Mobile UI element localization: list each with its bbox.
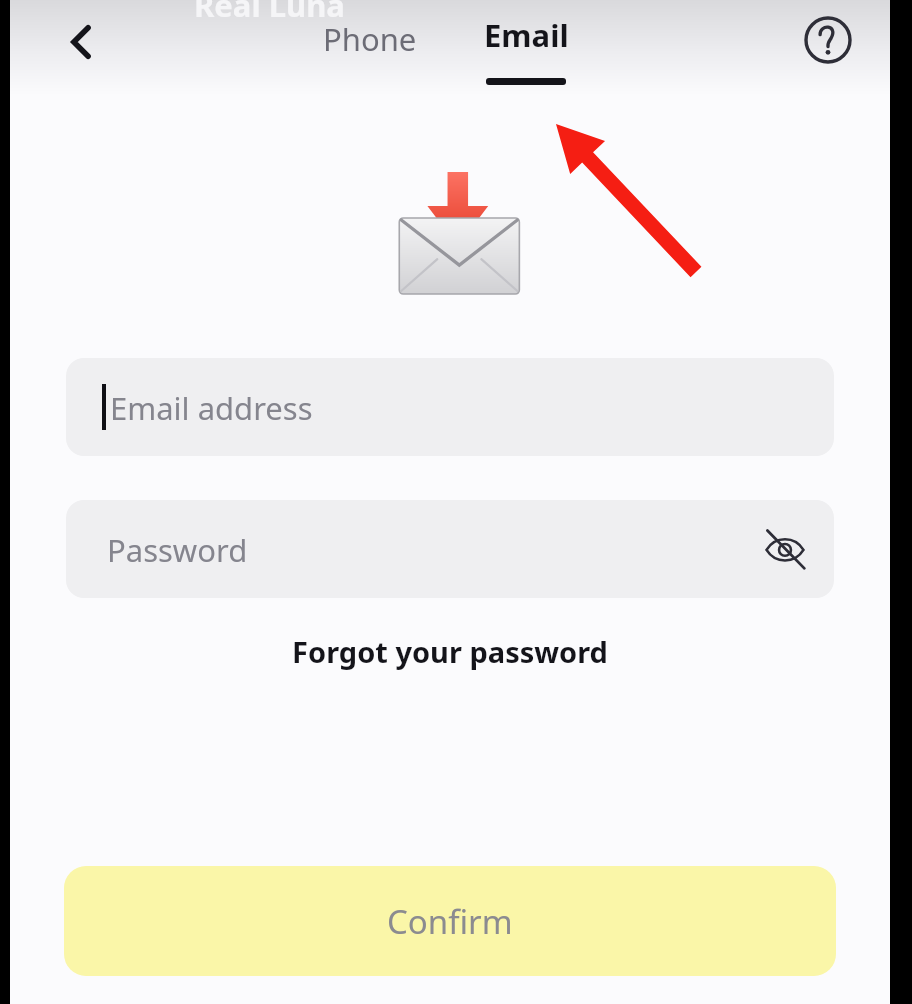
button[interactable]: Phone (298, 10, 442, 68)
staticText: Confirm (387, 899, 513, 944)
staticText: Email address (110, 387, 313, 429)
staticText: Real Luna (194, 0, 345, 26)
button[interactable]: Confirm (64, 866, 836, 976)
button[interactable]: Forgot your password (260, 622, 640, 680)
button[interactable]: Back (50, 10, 114, 74)
staticText: Password (107, 529, 248, 571)
button[interactable]: Email address (66, 358, 834, 456)
button[interactable]: Show password (756, 520, 814, 578)
button[interactable]: Help (796, 8, 860, 72)
staticText: Forgot your password (292, 632, 608, 671)
button[interactable]: Email (462, 10, 590, 92)
staticText: Email (484, 14, 569, 56)
button[interactable]: Password (66, 500, 834, 598)
staticText: Phone (323, 18, 417, 60)
